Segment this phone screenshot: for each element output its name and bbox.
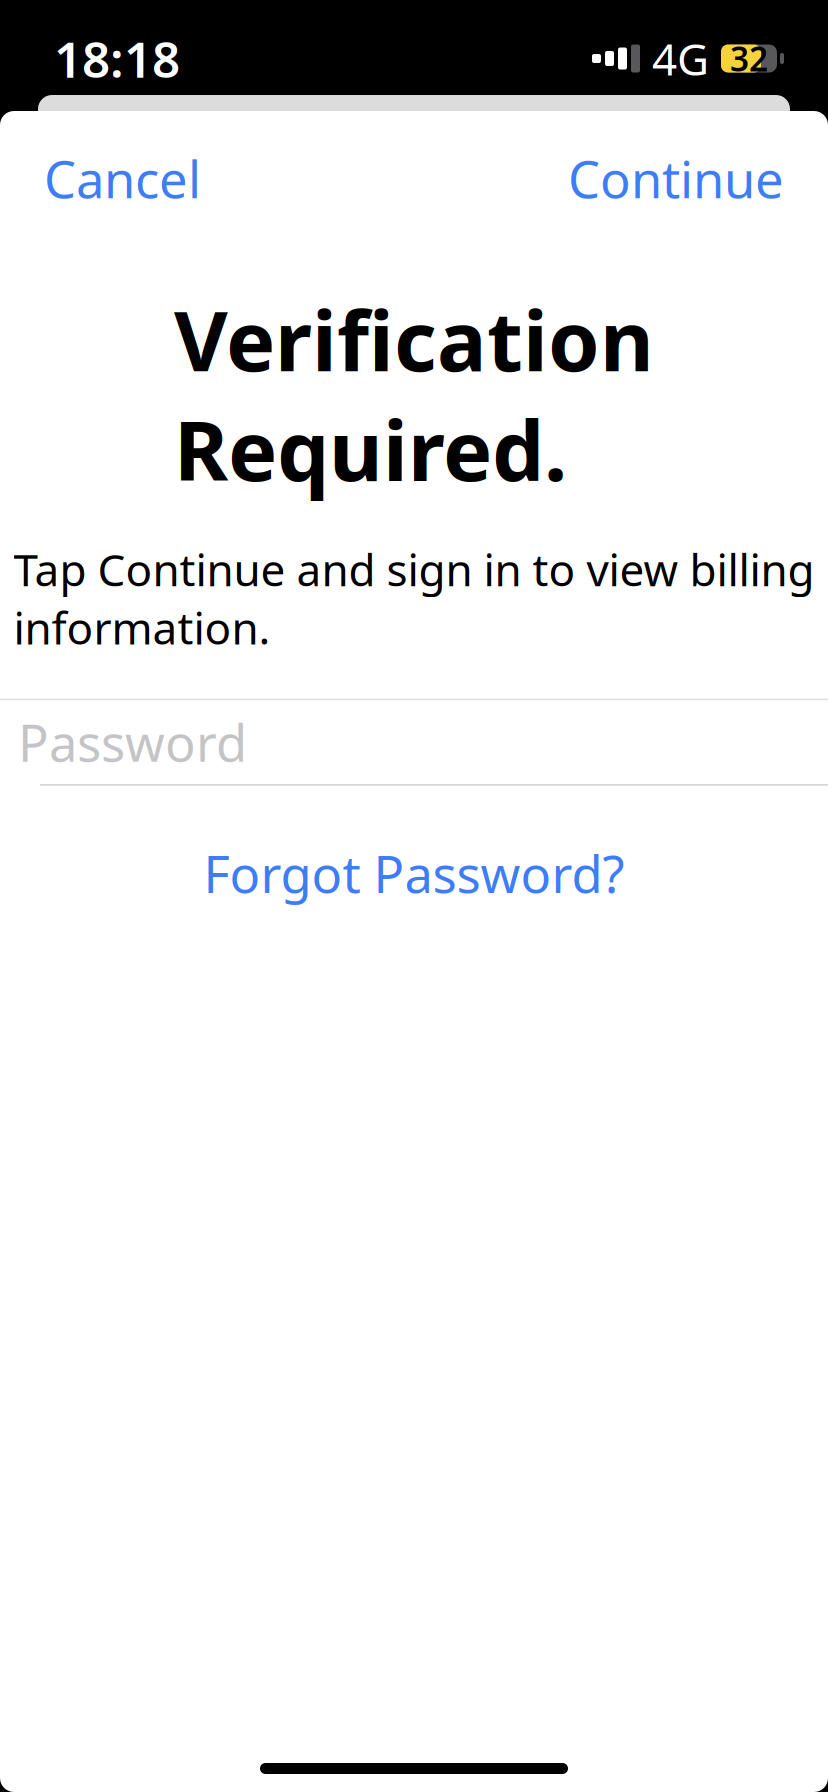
staticText: Forgot Password? [203,840,624,907]
staticText: Tap Continue and sign in to view billing… [13,540,814,657]
staticText: 4G [652,29,709,88]
staticText: Password [18,709,247,776]
staticText: 18:18 [54,26,180,91]
staticText: 32 [730,36,768,81]
button[interactable]: Continue [560,135,792,222]
button[interactable]: Cancel [36,135,209,222]
staticText: Verification Required. [174,284,654,504]
staticText: Cancel [44,145,201,212]
staticText: Continue [568,145,784,212]
button[interactable]: Forgot Password? [187,828,640,919]
